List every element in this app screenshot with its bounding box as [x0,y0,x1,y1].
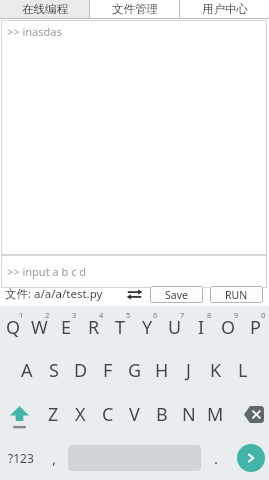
staticText: . [214,448,219,468]
staticText: I [198,315,205,340]
button[interactable]: 文件管理 [90,0,179,19]
staticText: J [186,358,191,383]
button[interactable]: M [202,392,229,436]
staticText: 7 [180,310,185,320]
button[interactable]: B [148,392,175,436]
staticText: A [21,358,33,383]
staticText: >> input a b c d [7,264,87,279]
button[interactable]: D [67,349,94,392]
staticText: 5 [126,310,131,320]
button[interactable]: 5 [107,306,134,349]
button[interactable]: 2 [26,306,53,349]
button[interactable]: A [13,349,40,392]
button[interactable]: 0 [242,306,269,349]
staticText: R [88,315,100,340]
staticText: C [102,402,114,427]
button[interactable]: 4 [80,306,107,349]
staticText: U [168,315,182,340]
staticText: >> inasdas [7,24,62,39]
button[interactable]: . [201,436,232,480]
button[interactable]: Backspace [229,392,269,436]
button[interactable]: , [41,436,68,480]
button[interactable]: Save [150,286,203,303]
staticText: 6 [153,310,158,320]
staticText: G [128,358,142,383]
staticText: 在线编程 [22,2,68,16]
button[interactable]: X [67,392,94,436]
button[interactable]: 6 [134,306,161,349]
staticText: 2 [45,310,50,320]
button[interactable]: Enter [237,444,265,472]
staticText: Y [142,315,153,340]
staticText: 8 [207,310,212,320]
staticText: 0 [261,310,266,320]
staticText: S [49,358,59,383]
button[interactable]: Shift [0,392,40,436]
staticText: 用户中心 [202,2,248,16]
button[interactable]: 1 [0,306,26,349]
staticText: 1 [19,310,24,320]
staticText: Save [165,288,188,302]
staticText: 文件: a/a/a/test.py [5,286,103,302]
staticText: P [250,315,261,340]
staticText: K [210,358,222,383]
staticText: Z [48,402,59,427]
staticText: T [115,315,126,340]
staticText: 9 [234,310,239,320]
staticText: F [103,358,113,383]
button[interactable]: H [148,349,175,392]
button[interactable]: RUN [210,286,263,303]
staticText: X [75,402,86,427]
button[interactable]: ?123 [0,436,41,480]
button[interactable]: Swap input mode [124,285,144,303]
staticText: 4 [99,310,104,320]
staticText: 文件管理 [112,2,158,16]
button[interactable]: 8 [188,306,215,349]
button[interactable]: 3 [53,306,80,349]
staticText: O [221,315,236,340]
staticText: D [74,358,88,383]
button[interactable]: 用户中心 [180,0,269,19]
staticText: M [207,402,224,427]
staticText: B [156,402,168,427]
button[interactable]: 9 [215,306,242,349]
staticText: N [182,402,196,427]
button[interactable]: N [175,392,202,436]
button[interactable]: K [202,349,229,392]
staticText: 3 [72,310,77,320]
staticText: E [61,315,72,340]
staticText: L [238,358,248,383]
button[interactable]: G [121,349,148,392]
button[interactable]: F [94,349,121,392]
button[interactable]: V [121,392,148,436]
button[interactable]: L [229,349,256,392]
button[interactable]: Z [40,392,67,436]
button[interactable]: 在线编程 [0,0,89,19]
button[interactable]: 7 [161,306,188,349]
staticText: RUN [225,288,248,302]
staticText: H [155,358,169,383]
staticText: , [52,448,57,468]
staticText: W [31,315,48,340]
staticText: V [129,402,140,427]
button[interactable]: J [175,349,202,392]
button[interactable]: S [40,349,67,392]
staticText: ?123 [8,450,34,466]
button[interactable]: C [94,392,121,436]
staticText: Q [6,315,21,340]
